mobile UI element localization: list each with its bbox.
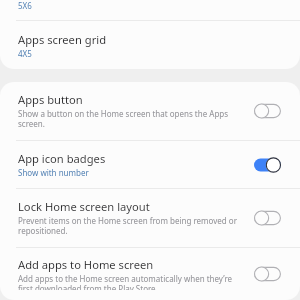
- staticText: Add apps to the Home screen automaticall…: [18, 273, 238, 290]
- staticText: Prevent items on the Home screen from be…: [18, 215, 238, 236]
- button[interactable]: Apps screen grid: [0, 21, 300, 69]
- button[interactable]: Apps button: [0, 82, 300, 140]
- staticText: Show a button on the Home screen that op…: [18, 108, 238, 129]
- button[interactable]: App icon badges: [254, 157, 281, 173]
- staticText: Add apps to Home screen: [18, 257, 154, 272]
- staticText: Apps button: [18, 92, 83, 107]
- staticText: 4X5: [18, 48, 32, 59]
- staticText: App icon badges: [18, 151, 106, 166]
- staticText: Lock Home screen layout: [18, 199, 150, 214]
- staticText: Apps screen grid: [18, 32, 107, 47]
- staticText: 5X6: [18, 0, 32, 11]
- button[interactable]: App icon badges: [0, 141, 300, 188]
- button[interactable]: Lock Home screen layout: [0, 189, 300, 247]
- button[interactable]: Apps button: [254, 103, 281, 119]
- button[interactable]: Add apps to Home screen: [0, 248, 300, 300]
- button[interactable]: Lock Home screen layout: [254, 210, 281, 226]
- button[interactable]: Add apps to Home screen: [254, 266, 281, 282]
- staticText: Show with number: [18, 167, 89, 178]
